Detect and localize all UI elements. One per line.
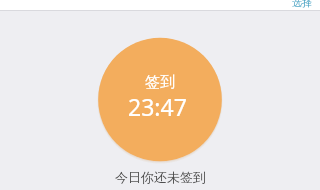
staticText: 签到 bbox=[145, 73, 175, 92]
staticText: 选择 bbox=[292, 0, 312, 9]
button[interactable]: 签到 bbox=[98, 38, 222, 162]
button[interactable]: 选择 bbox=[286, 0, 318, 10]
staticText: 23:47 bbox=[128, 91, 187, 122]
staticText: 今日你还未签到 bbox=[115, 169, 206, 185]
